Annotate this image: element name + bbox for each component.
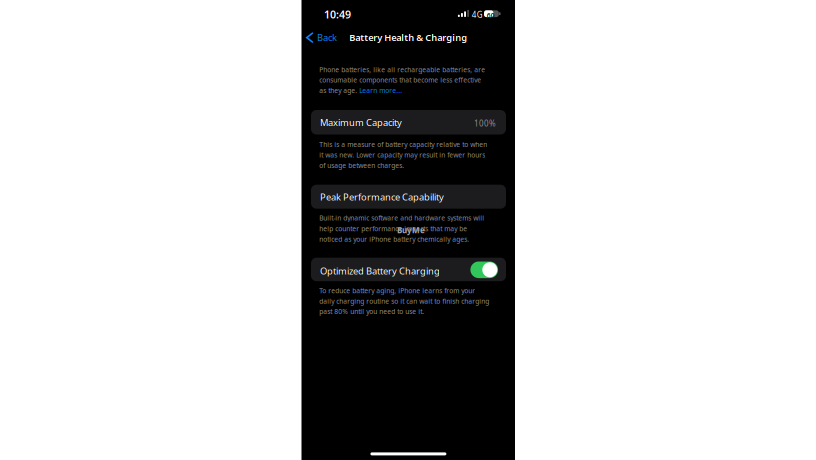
staticText: noticed as your iPhone battery chemicall… [319,235,469,244]
button[interactable]: Learn more... [359,86,402,95]
staticText: Learn more... [359,86,402,95]
staticText: past 80% until you need to use it. [319,307,424,316]
staticText: Peak Performance Capability [320,191,444,203]
button[interactable]: Optimized Battery Charging [470,261,498,278]
staticText: daily charging routine so it can wait to… [319,297,489,305]
staticText: BuyMe [397,225,425,235]
staticText: help counter performance impacts that ma… [319,224,467,233]
button[interactable]: Back [301,26,345,47]
staticText: Optimized Battery Charging [320,265,440,277]
staticText: it was new. Lower capacity may result in… [319,150,485,159]
staticText: To reduce battery aging, iPhone learns f… [319,286,475,295]
staticText: Battery Health & Charging [349,31,467,44]
staticText: Built-in dynamic software and hardware s… [319,213,484,222]
staticText: Maximum Capacity [320,116,402,129]
staticText: 4G [472,9,483,20]
staticText: 100% [474,118,496,129]
staticText: of usage between charges. [319,161,404,170]
staticText: consumable components that become less e… [319,75,481,84]
staticText: 10:49 [324,7,351,21]
staticText: 60 [487,11,495,20]
staticText: Phone batteries, like all rechargeable b… [319,65,485,74]
staticText: as they age. [319,86,359,95]
staticText: This is a measure of battery capacity re… [319,140,487,149]
staticText: Back [317,31,337,44]
